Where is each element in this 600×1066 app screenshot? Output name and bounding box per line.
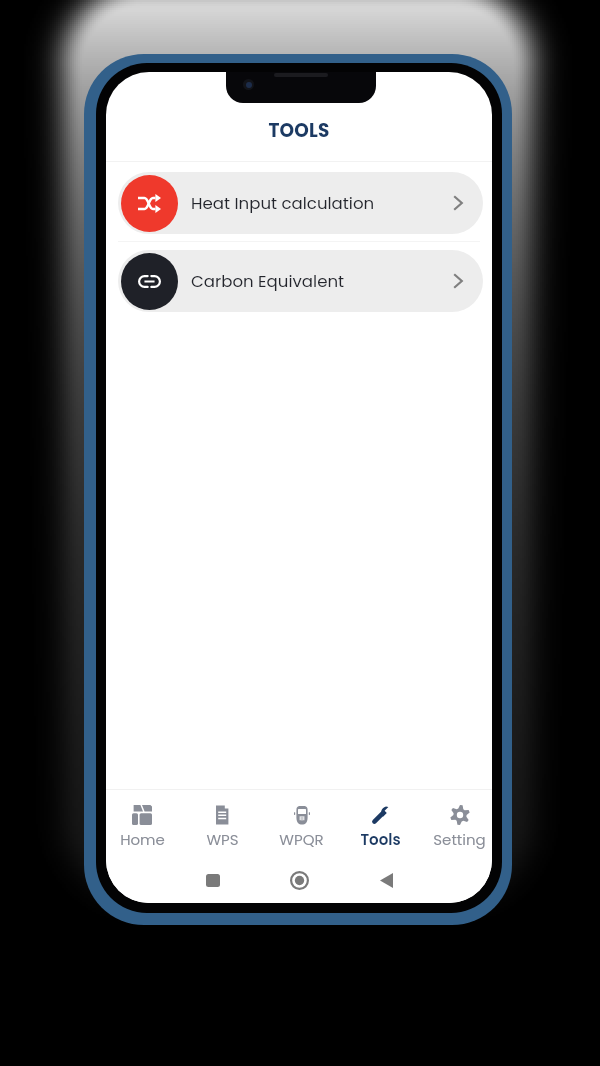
- button[interactable]: Home: [256, 863, 343, 897]
- button[interactable]: Back: [343, 863, 430, 897]
- staticText: Heat Input calculation: [191, 192, 375, 215]
- staticText: TOOLS: [106, 118, 492, 144]
- button[interactable]: Setting: [420, 790, 492, 856]
- button[interactable]: WPS: [182, 790, 262, 856]
- staticText: WPQR: [279, 829, 324, 850]
- button[interactable]: WPQR: [262, 790, 341, 856]
- staticText: Home: [120, 829, 165, 850]
- button[interactable]: Recents: [169, 863, 256, 897]
- staticText: WPS: [206, 829, 239, 850]
- staticText: Tools: [360, 829, 401, 850]
- staticText: Setting: [433, 829, 486, 850]
- staticText: Carbon Equivalent: [191, 270, 345, 293]
- button[interactable]: Home: [106, 790, 182, 856]
- button[interactable]: Carbon Equivalent: [118, 250, 483, 312]
- button[interactable]: Heat Input calculation: [118, 172, 483, 234]
- button[interactable]: Tools: [341, 790, 420, 856]
